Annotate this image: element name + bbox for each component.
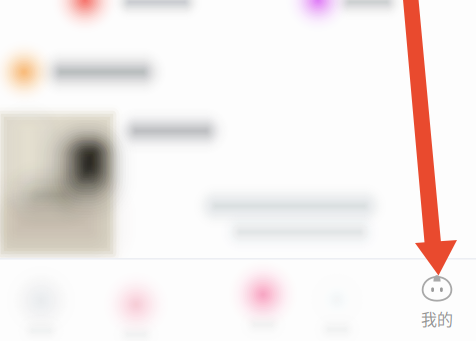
button[interactable]: 我的 [388, 258, 476, 341]
staticText: 我的 [421, 307, 453, 330]
button[interactable]: Tab [215, 270, 310, 341]
button[interactable]: Tab [88, 280, 183, 341]
button[interactable]: Tab [0, 276, 88, 341]
